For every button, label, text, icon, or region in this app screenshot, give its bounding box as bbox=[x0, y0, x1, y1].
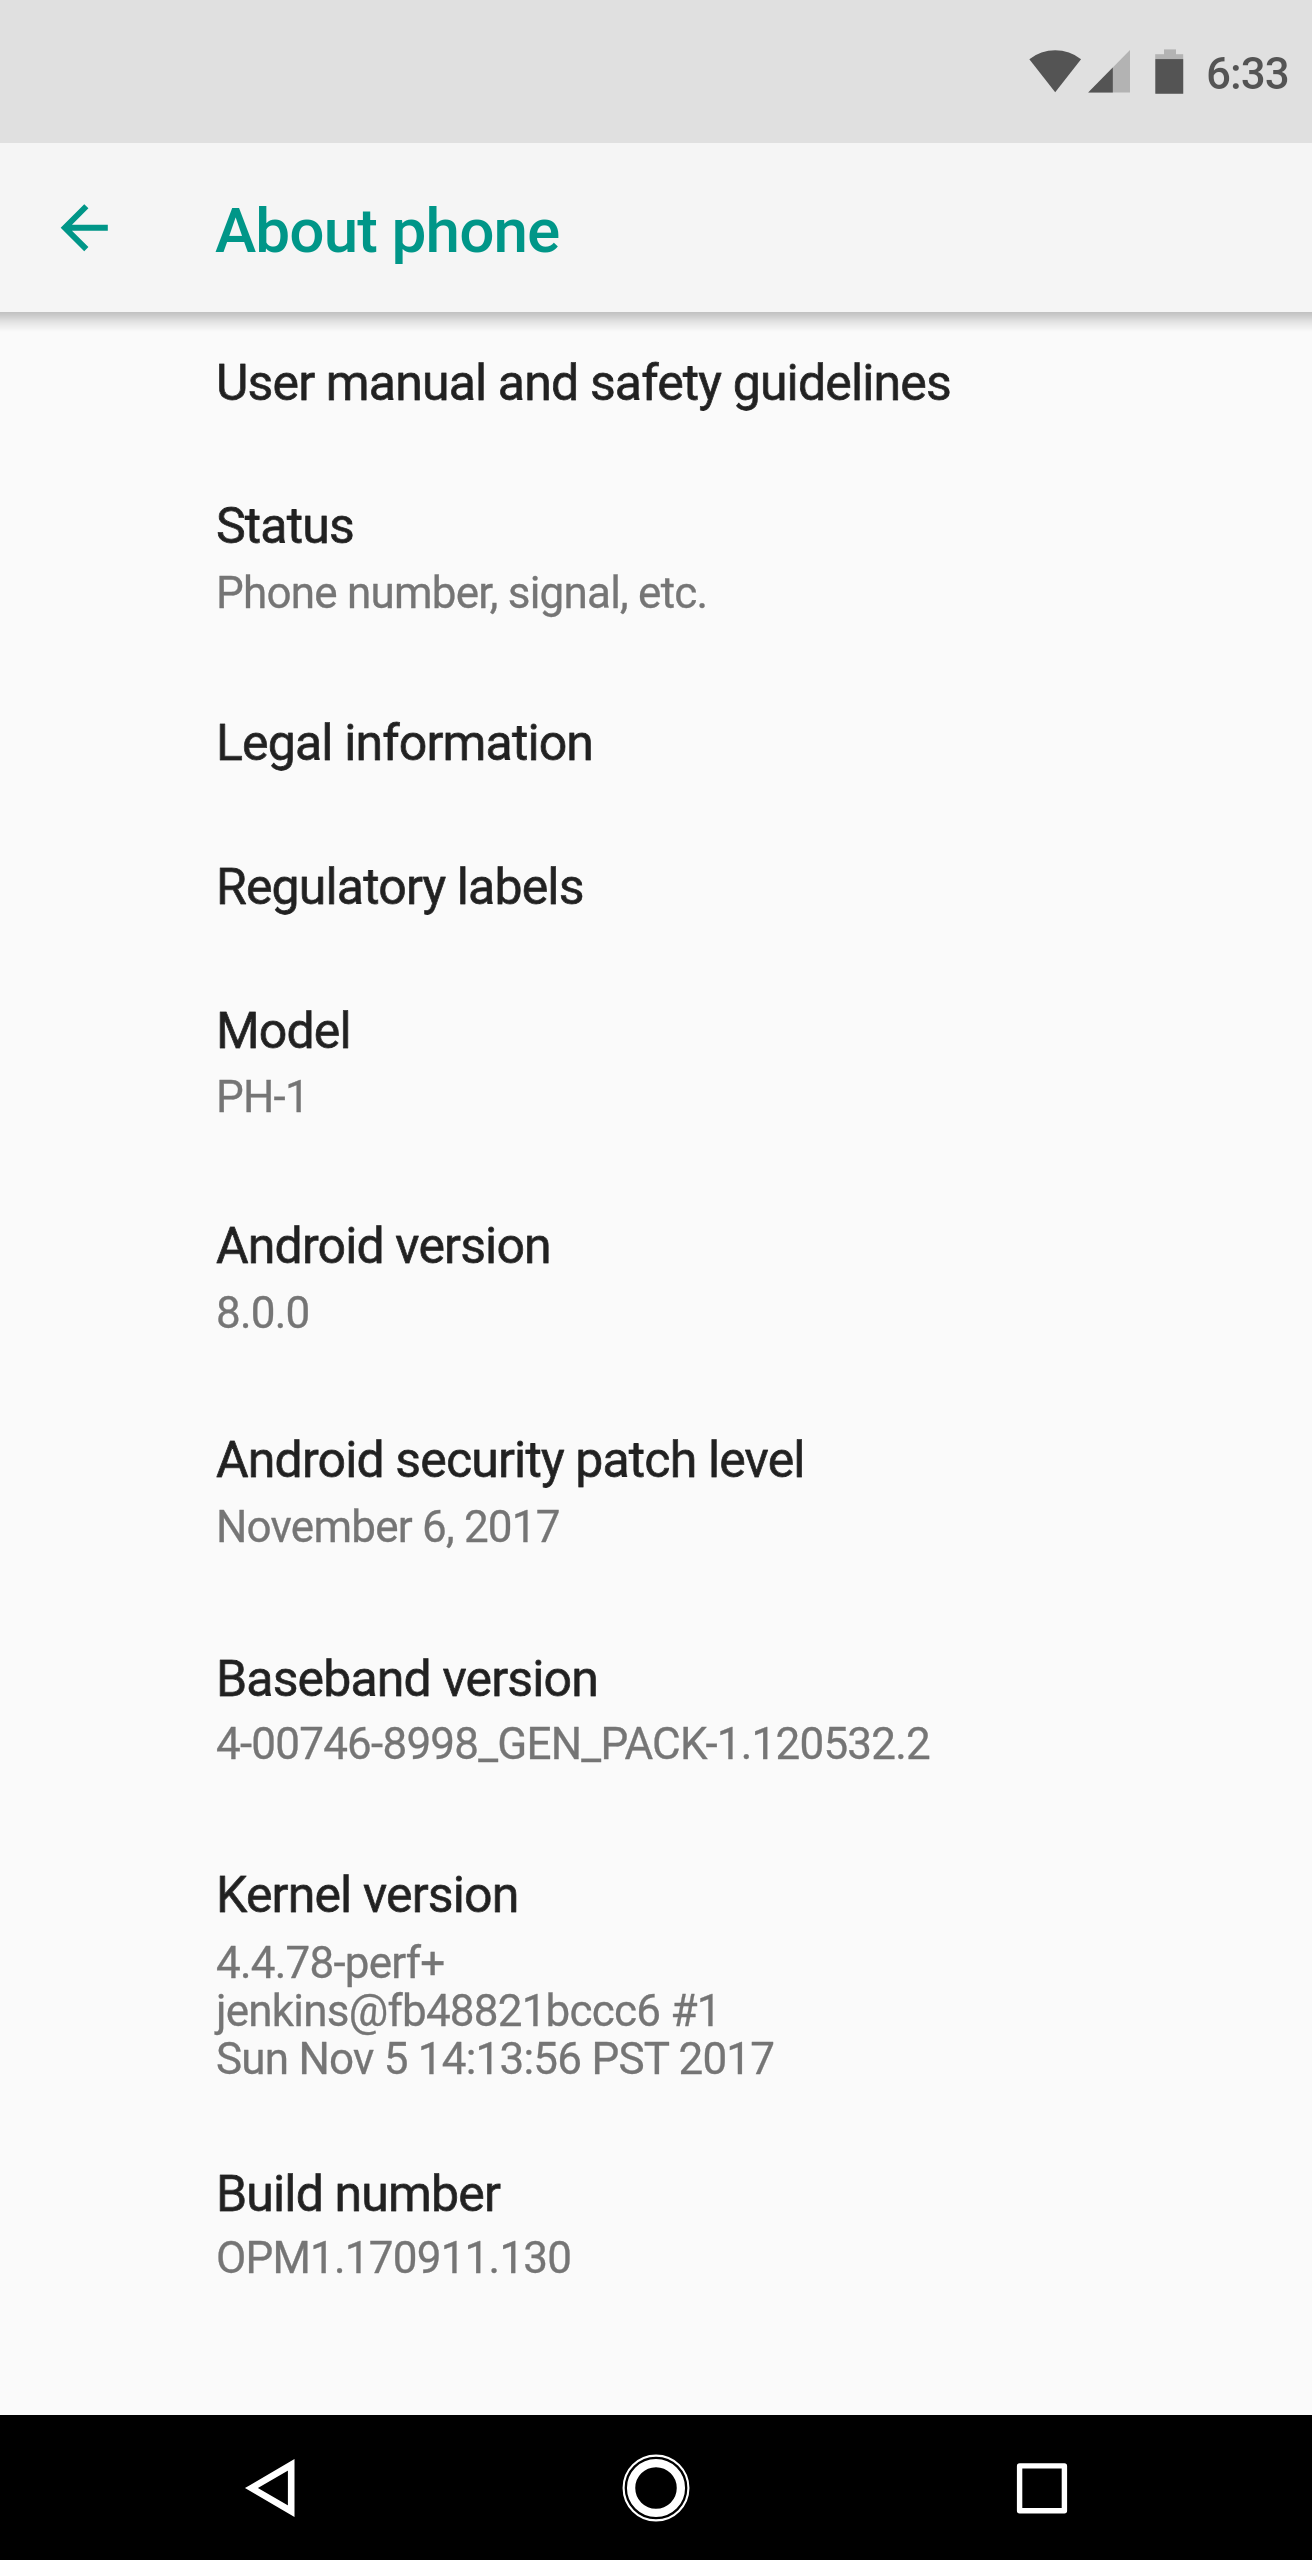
staticText: Android security patch level bbox=[216, 1431, 805, 1490]
staticText: PH-1 bbox=[216, 1071, 309, 1123]
staticText: November 6, 2017 bbox=[216, 1501, 560, 1553]
staticText: 6:33 bbox=[1206, 48, 1289, 100]
staticText: Regulatory labels bbox=[216, 858, 584, 917]
staticText: Phone number, signal, etc. bbox=[216, 567, 708, 619]
staticText: 4.4.78-perf+ jenkins@fb48821bccc6 #1 Sun… bbox=[216, 1937, 775, 2085]
staticText: About phone bbox=[215, 194, 560, 267]
staticText: User manual and safety guidelines bbox=[216, 354, 951, 413]
staticText: Legal information bbox=[216, 714, 594, 773]
button[interactable]: Status bbox=[0, 436, 1312, 653]
staticText: Regulatory labels bbox=[216, 858, 584, 917]
staticText: OPM1.170911.130 bbox=[216, 2232, 572, 2284]
staticText: Model bbox=[216, 1002, 351, 1061]
button[interactable]: Android version bbox=[0, 1155, 1312, 1370]
button[interactable]: Legal information bbox=[0, 653, 1312, 796]
button[interactable]: Regulatory labels bbox=[0, 796, 1312, 940]
staticText: November 6, 2017 bbox=[216, 1501, 560, 1553]
staticText: Android version bbox=[216, 1217, 551, 1276]
staticText: Status bbox=[216, 497, 354, 556]
staticText: 4-00746-8998_GEN_PACK-1.120532.2 bbox=[216, 1718, 931, 1770]
staticText: 8.0.0 bbox=[216, 1287, 310, 1339]
staticText: Kernel version bbox=[216, 1866, 519, 1925]
staticText: 8.0.0 bbox=[216, 1287, 310, 1339]
staticText: Baseband version bbox=[216, 1650, 599, 1709]
staticText: OPM1.170911.130 bbox=[216, 2232, 572, 2284]
staticText: PH-1 bbox=[216, 1071, 309, 1123]
button[interactable]: Home bbox=[581, 2415, 731, 2560]
staticText: Legal information bbox=[216, 714, 594, 773]
button[interactable]: Model bbox=[0, 940, 1312, 1155]
staticText: Kernel version bbox=[216, 1866, 519, 1925]
staticText: Baseband version bbox=[216, 1650, 599, 1709]
staticText: Android security patch level bbox=[216, 1431, 805, 1490]
button[interactable]: Navigate up bbox=[36, 180, 132, 276]
button[interactable]: Recent apps bbox=[967, 2415, 1117, 2560]
button[interactable]: User manual and safety guidelines bbox=[0, 312, 1312, 436]
staticText: Android version bbox=[216, 1217, 551, 1276]
staticText: Build number bbox=[216, 2165, 500, 2224]
staticText: Build number bbox=[216, 2165, 500, 2224]
staticText: Phone number, signal, etc. bbox=[216, 567, 708, 619]
button[interactable]: Baseband version bbox=[0, 1585, 1312, 1800]
staticText: User manual and safety guidelines bbox=[216, 354, 951, 413]
button[interactable]: Build number bbox=[0, 2100, 1312, 2330]
staticText: Model bbox=[216, 1002, 351, 1061]
button[interactable]: Kernel version bbox=[0, 1800, 1312, 2100]
button[interactable]: Back bbox=[195, 2415, 345, 2560]
staticText: 4.4.78-perf+ jenkins@fb48821bccc6 #1 Sun… bbox=[216, 1937, 775, 2085]
button[interactable]: Android security patch level bbox=[0, 1370, 1312, 1585]
staticText: 4-00746-8998_GEN_PACK-1.120532.2 bbox=[216, 1718, 931, 1770]
staticText: Status bbox=[216, 497, 354, 556]
